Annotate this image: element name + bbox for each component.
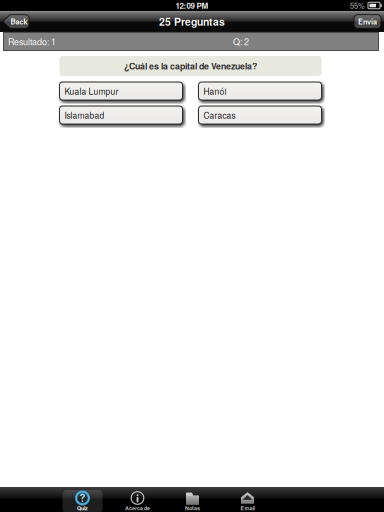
staticText: Quiz	[77, 504, 88, 512]
staticText: Kuala Lumpur	[64, 85, 118, 97]
staticText: Hanói	[203, 85, 226, 97]
button[interactable]: Quiz	[55, 487, 110, 512]
staticText: Email	[240, 504, 254, 512]
staticText: Resultado: 1	[8, 35, 56, 48]
staticText: Q: 2	[233, 35, 249, 48]
staticText: Islamabad	[64, 109, 104, 121]
staticText: Notas	[185, 504, 200, 512]
staticText: Caracas	[203, 109, 235, 121]
staticText: Envia	[358, 16, 377, 27]
staticText: 12:09 PM	[175, 0, 208, 11]
button[interactable]: Caracas	[198, 106, 321, 124]
staticText: Back	[10, 16, 27, 27]
staticText: Acerca de	[125, 504, 150, 512]
staticText: 25 Preguntas	[159, 14, 225, 29]
button[interactable]: Envia	[354, 15, 381, 28]
staticText: ¿Cuál es la capital de Venezuela?	[124, 60, 257, 72]
staticText: 55%	[350, 0, 365, 11]
button[interactable]: Notas	[165, 487, 220, 512]
button[interactable]: Acerca de	[110, 487, 165, 512]
button[interactable]: Email	[220, 487, 275, 512]
button[interactable]: Kuala Lumpur	[59, 82, 182, 100]
button[interactable]: Back	[3, 15, 29, 28]
button[interactable]: Hanói	[198, 82, 321, 100]
button[interactable]: Islamabad	[59, 106, 182, 124]
